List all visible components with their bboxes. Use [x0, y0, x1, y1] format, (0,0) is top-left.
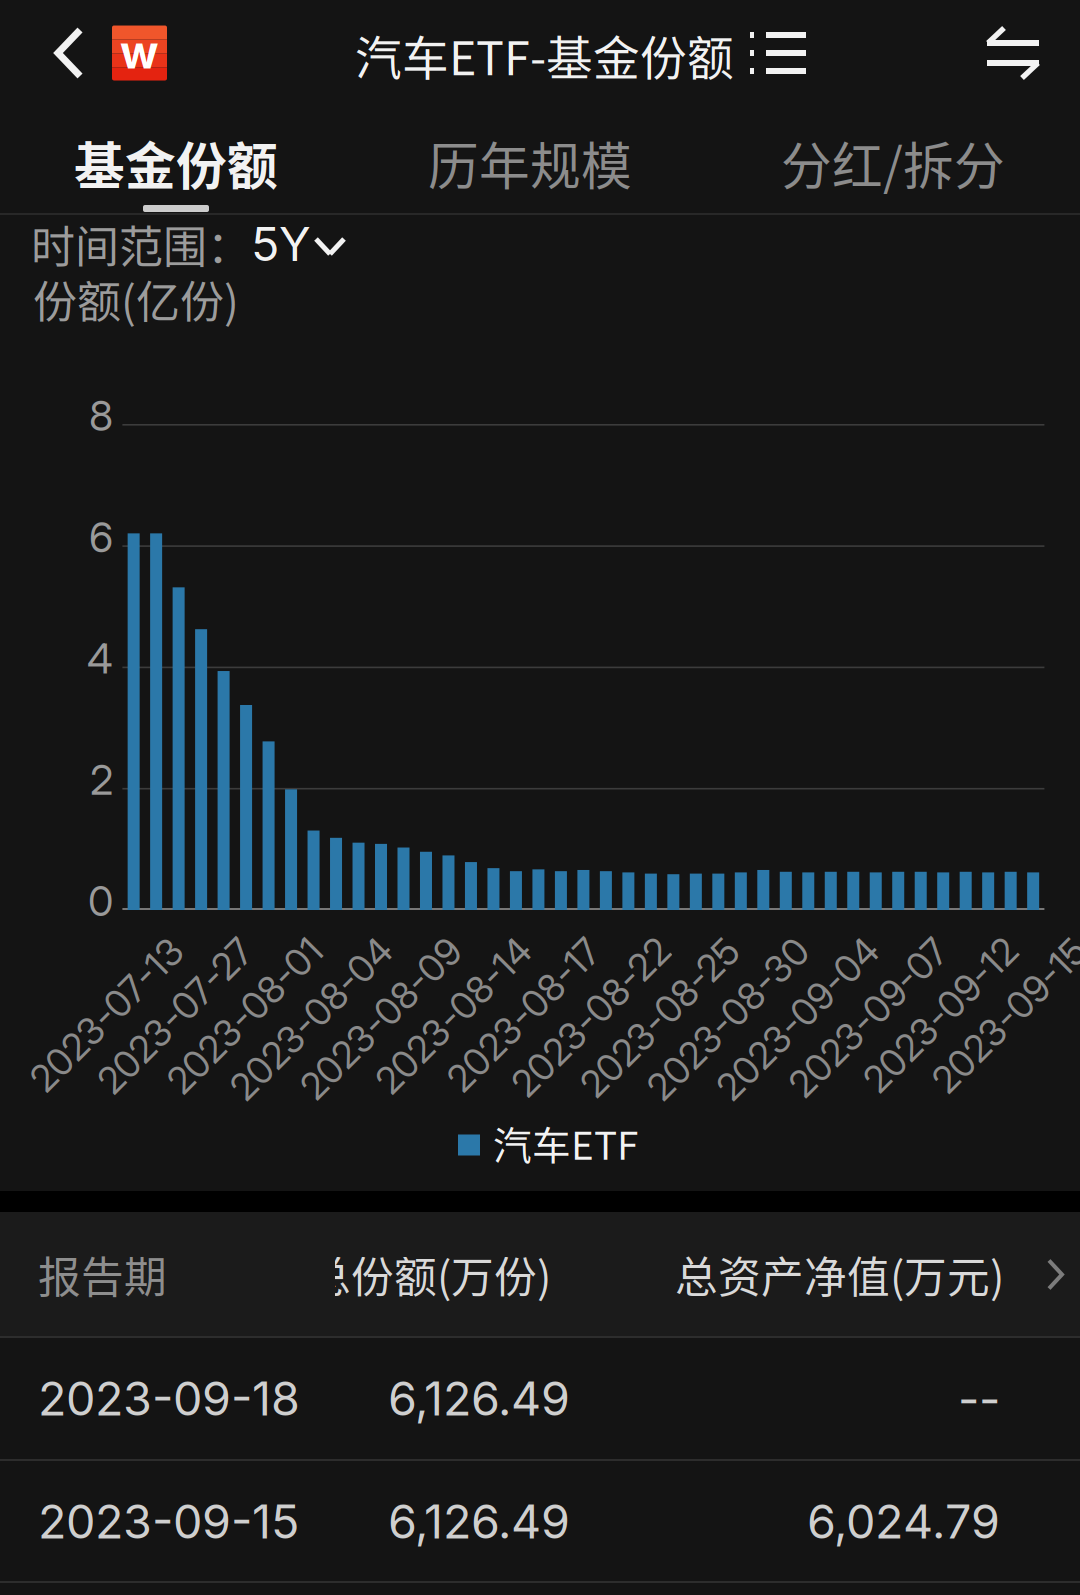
staticText: 2023-09-04 — [647, 927, 858, 973]
staticText: 汽车ETF — [493, 1115, 638, 1171]
staticText: 6,024.79 — [807, 1493, 1000, 1550]
staticText: 6,126.49 — [388, 1493, 570, 1550]
staticText: 2023-09-07 — [720, 927, 927, 973]
button[interactable]: Back — [39, 0, 181, 106]
staticText: 分红/拆分 — [781, 126, 1005, 200]
staticText: 2023-08-30 — [577, 927, 788, 973]
button[interactable]: 分红/拆分 — [713, 121, 1073, 205]
staticText: 2 — [90, 755, 113, 805]
staticText: 汽车ETF-基金份额 — [355, 21, 734, 89]
staticText: -- — [958, 1370, 1000, 1427]
button[interactable]: Switch chart — [969, 0, 1057, 106]
staticText: 2023-08-25 — [512, 927, 719, 973]
staticText: 时间范围： — [31, 212, 251, 276]
staticText: 总份额(万份) — [308, 1244, 551, 1305]
staticText: 6 — [89, 512, 113, 562]
staticText: 总资产净值(万元) — [675, 1244, 1004, 1305]
staticText: 4 — [87, 633, 113, 683]
staticText: 0 — [88, 876, 113, 926]
staticText: 基金份额 — [74, 126, 278, 200]
staticText: w — [120, 25, 159, 79]
staticText: 2023-09-12 — [797, 927, 997, 973]
staticText: 2023-08-14 — [308, 927, 510, 973]
staticText: 报告期 — [38, 1244, 167, 1305]
staticText: 历年规模 — [428, 126, 632, 200]
button[interactable]: 2023-09-15 — [0, 1461, 1080, 1582]
staticText: 2023-08-01 — [100, 927, 302, 973]
button[interactable]: 历年规模 — [350, 121, 710, 205]
staticText: 2023-09-15 — [865, 927, 1066, 973]
staticText: 2023-08-17 — [381, 927, 580, 973]
staticText: 8 — [89, 391, 113, 441]
staticText: 2023-08-22 — [443, 927, 649, 973]
button[interactable]: 基金份额 — [0, 121, 356, 205]
staticText: 2023-08-04 — [160, 927, 371, 973]
staticText: 6,126.49 — [388, 1370, 570, 1427]
staticText: 2023-07-27 — [30, 927, 232, 973]
staticText: 2023-08-09 — [231, 927, 441, 973]
staticText: 2023-09-18 — [38, 1370, 300, 1427]
button[interactable]: 2023-09-18 — [0, 1338, 1080, 1459]
staticText: 2023-09-15 — [38, 1493, 299, 1550]
button[interactable]: 汽车ETF-基金份额 — [347, 0, 816, 110]
staticText: 5Y — [251, 216, 311, 272]
staticText: 份额(亿份) — [33, 267, 239, 331]
staticText: 2023-07-13 — [0, 927, 163, 973]
